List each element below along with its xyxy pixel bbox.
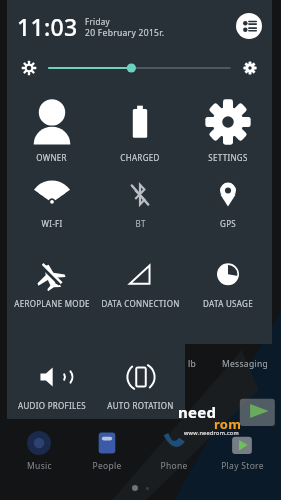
staticText: www.needrom.com — [184, 429, 239, 436]
staticText: 20 February 2015r. — [85, 27, 165, 39]
button[interactable]: DATA USAGE — [184, 248, 272, 328]
button[interactable]: Brightness settings — [238, 56, 262, 80]
button[interactable]: WI-FI — [7, 168, 96, 248]
button[interactable]: Music — [11, 430, 67, 472]
staticText: SETTINGS — [208, 152, 248, 163]
staticText: People — [92, 460, 122, 472]
button[interactable]: Play Store — [214, 430, 270, 472]
staticText: DATA USAGE — [203, 298, 253, 309]
staticText: 11:03 — [17, 11, 78, 42]
staticText: AEROPLANE MODE — [14, 298, 90, 309]
staticText: Friday — [85, 16, 110, 27]
staticText: BT — [135, 218, 146, 229]
staticText: Messaging — [222, 358, 269, 370]
button[interactable]: People — [79, 430, 135, 472]
staticText: Play Store — [221, 460, 264, 472]
button[interactable]: OWNER — [7, 88, 96, 168]
button[interactable]: SETTINGS — [184, 88, 272, 168]
button[interactable]: AUTO ROTATION — [96, 350, 185, 419]
staticText: GPS — [220, 218, 236, 229]
button[interactable]: Auto brightness — [17, 56, 41, 80]
staticText: CHARGED — [120, 152, 160, 163]
button[interactable]: Phone — [146, 430, 202, 472]
staticText: WI-FI — [41, 218, 63, 229]
staticText: Phone — [160, 460, 188, 472]
staticText: rom — [214, 415, 242, 433]
button[interactable] — [49, 56, 230, 80]
staticText: AUDIO PROFILES — [18, 400, 86, 411]
staticText: OWNER — [36, 152, 67, 163]
button[interactable]: CHARGED — [96, 88, 184, 168]
button[interactable]: Notifications list — [236, 13, 262, 39]
staticText: DATA CONNECTION — [101, 298, 180, 309]
button[interactable]: AUDIO PROFILES — [7, 350, 96, 419]
button[interactable]: GPS — [184, 168, 272, 248]
staticText: Music — [27, 460, 52, 472]
staticText: lb — [188, 358, 197, 370]
button[interactable]: DATA CONNECTION — [96, 248, 184, 328]
button[interactable]: BT — [96, 168, 184, 248]
staticText: AUTO ROTATION — [107, 400, 174, 411]
staticText: need — [178, 402, 217, 422]
button[interactable]: AEROPLANE MODE — [7, 248, 96, 328]
